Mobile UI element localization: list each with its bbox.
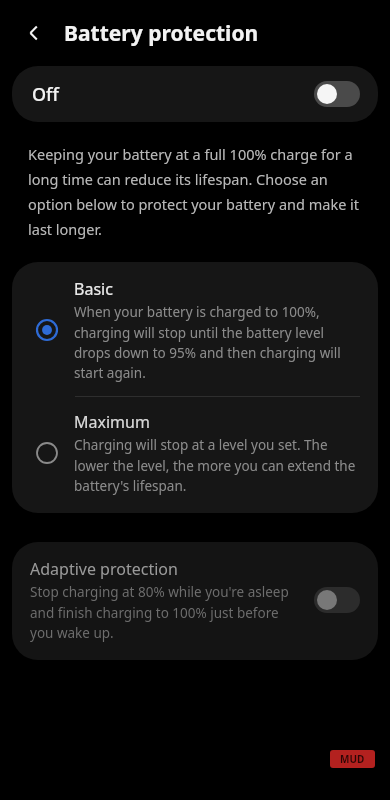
button[interactable]: Toggle	[314, 587, 360, 613]
staticText: Basic	[74, 278, 113, 300]
staticText: When your battery is charged to 100%, ch…	[74, 303, 360, 382]
staticText: Stop charging at 80% while you're asleep…	[30, 583, 304, 642]
button[interactable]: Basic	[12, 262, 378, 396]
button[interactable]: Maximum	[12, 397, 378, 513]
staticText: Charging will stop at a level you set. T…	[74, 436, 360, 495]
staticText: Adaptive protection	[30, 558, 178, 580]
button[interactable]: Back	[18, 17, 50, 49]
button[interactable]: Adaptive protection	[12, 542, 378, 660]
staticText: Maximum	[74, 411, 150, 433]
staticText: Keeping your battery at a full 100% char…	[28, 144, 364, 239]
staticText: MUD	[340, 752, 365, 766]
staticText: Battery protection	[64, 19, 259, 48]
button[interactable]: Toggle	[314, 81, 360, 107]
button[interactable]: Off	[12, 66, 378, 122]
staticText: Off	[32, 82, 59, 107]
